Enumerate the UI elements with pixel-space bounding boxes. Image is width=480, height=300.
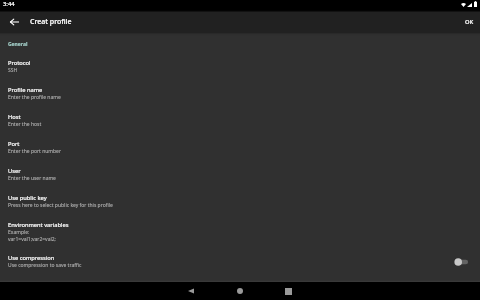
staticText: Enter the user name bbox=[8, 175, 56, 182]
staticText: Use public key bbox=[8, 194, 47, 202]
button[interactable]: Use compression toggle bbox=[449, 255, 469, 269]
button[interactable]: Environment variables bbox=[0, 215, 480, 248]
staticText: User bbox=[8, 167, 21, 175]
staticText: Port bbox=[8, 140, 20, 148]
staticText: Creat profile bbox=[30, 17, 72, 27]
staticText: Use compression bbox=[8, 254, 55, 262]
button[interactable]: Profile name bbox=[0, 80, 480, 107]
staticText: Protocol bbox=[8, 59, 31, 67]
staticText: Enter the port number bbox=[8, 148, 61, 155]
staticText: 3:44 bbox=[3, 0, 15, 8]
button[interactable]: Host bbox=[0, 107, 480, 134]
staticText: Example: var1=val1;var2=val2; bbox=[8, 229, 56, 243]
staticText: Press here to select public key for this… bbox=[8, 202, 113, 209]
button[interactable]: Home bbox=[231, 282, 249, 300]
staticText: Enter the profile name bbox=[8, 94, 61, 101]
staticText: Host bbox=[8, 113, 21, 121]
button[interactable]: Recent apps bbox=[279, 282, 297, 300]
staticText: General bbox=[8, 41, 28, 48]
staticText: Profile name bbox=[8, 86, 43, 94]
button[interactable]: Navigate up bbox=[4, 12, 24, 32]
staticText: Enter the host bbox=[8, 121, 42, 128]
button[interactable]: Protocol bbox=[0, 53, 480, 80]
button[interactable]: Use public key bbox=[0, 188, 480, 215]
staticText: SSH bbox=[8, 67, 18, 74]
button[interactable]: Back bbox=[182, 282, 200, 300]
staticText: OK bbox=[465, 18, 474, 26]
button[interactable]: User bbox=[0, 161, 480, 188]
staticText: Use compression to save traffic bbox=[8, 262, 82, 269]
button[interactable]: Port bbox=[0, 134, 480, 161]
staticText: Environment variables bbox=[8, 221, 69, 229]
button[interactable]: OK bbox=[459, 13, 480, 31]
button[interactable]: Use compression bbox=[0, 248, 480, 275]
